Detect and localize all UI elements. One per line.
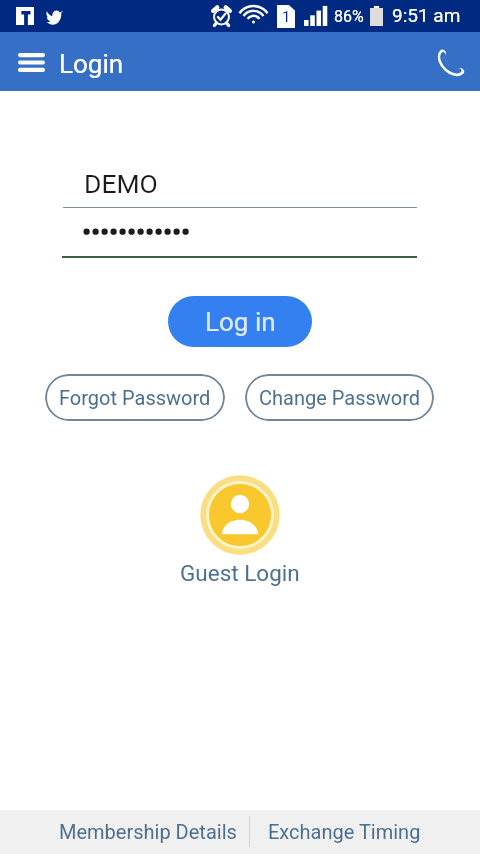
staticText: Guest Login [180,560,300,586]
staticText: Membership Details [59,820,237,843]
staticText: Login [59,49,124,79]
staticText: 86% [334,7,364,26]
staticText: Change Password [259,386,421,409]
staticText: Exchange Timing [268,820,421,843]
button[interactable]: Change Password [245,374,434,421]
button[interactable]: Forgot Password [45,374,225,421]
button[interactable]: Log in [168,296,312,347]
button[interactable]: Membership Details [46,810,249,854]
staticText: 1 [282,8,291,26]
button[interactable]: Guest Login [0,475,480,586]
staticText: Log in [205,307,276,337]
staticText: DEMO [84,168,158,199]
button[interactable]: Call [428,40,474,86]
button[interactable]: Exchange Timing [250,810,438,854]
staticText: 9:51 am [392,4,461,26]
button[interactable]: Menu [10,41,52,83]
staticText: Forgot Password [59,386,211,409]
